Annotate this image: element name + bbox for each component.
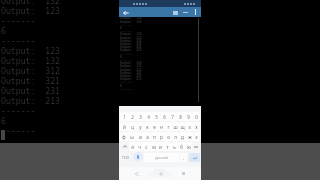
button[interactable]: ь xyxy=(171,142,178,151)
button[interactable]: More options xyxy=(191,8,199,16)
staticText: 7 xyxy=(171,114,174,120)
button[interactable]: ж xyxy=(186,132,193,141)
staticText: р xyxy=(160,134,163,140)
button[interactable]: б xyxy=(178,142,185,151)
staticText: Output: 123 xyxy=(1,5,60,16)
button[interactable]: ю xyxy=(185,142,192,151)
button[interactable]: 7 xyxy=(168,112,176,121)
staticText: ------- xyxy=(120,58,133,62)
staticText: и xyxy=(159,144,162,150)
staticText: Output: 231 xyxy=(1,85,60,96)
button[interactable]: Run xyxy=(171,8,180,17)
staticText: ------- xyxy=(120,29,133,33)
button[interactable]: я xyxy=(129,142,136,151)
button[interactable]: й xyxy=(120,122,128,131)
button[interactable]: щ xyxy=(179,122,186,131)
button[interactable]: . xyxy=(180,153,187,162)
button[interactable]: г xyxy=(165,122,172,131)
button[interactable]: р xyxy=(158,132,165,141)
button[interactable]: ф xyxy=(120,132,128,141)
staticText: в xyxy=(139,134,142,140)
staticText: з xyxy=(188,124,191,130)
button[interactable]: е xyxy=(151,122,158,131)
staticText: е xyxy=(153,124,156,130)
button[interactable]: л xyxy=(172,132,179,141)
button[interactable]: х xyxy=(193,122,200,131)
staticText: ш xyxy=(173,124,178,130)
staticText: 6 xyxy=(120,84,122,88)
staticText: й xyxy=(123,124,126,130)
button[interactable]: н xyxy=(158,122,165,131)
button[interactable]: з xyxy=(186,122,193,131)
staticText: Output: 123 xyxy=(120,20,142,24)
button[interactable]: д xyxy=(179,132,186,141)
button[interactable]: м xyxy=(150,142,157,151)
staticText: ц xyxy=(131,124,134,130)
button[interactable]: Backspace xyxy=(192,142,200,151)
button[interactable]: Enter xyxy=(189,153,200,162)
staticText: х xyxy=(195,124,198,130)
staticText: Output: 213 xyxy=(1,95,60,106)
staticText: ч xyxy=(138,144,141,150)
staticText: Output: 231 xyxy=(120,74,142,78)
staticText: у xyxy=(139,124,142,130)
staticText: ------- xyxy=(1,125,36,136)
button[interactable]: Back xyxy=(121,8,130,17)
staticText: 8 xyxy=(179,114,182,120)
staticText: Output: 132 xyxy=(1,55,60,66)
button[interactable]: ы xyxy=(128,132,136,141)
button[interactable]: 1 xyxy=(120,112,128,121)
staticText: Output: 132 xyxy=(120,64,142,68)
button[interactable]: а xyxy=(144,132,151,141)
button[interactable]: к xyxy=(144,122,151,131)
button[interactable]: ц xyxy=(128,122,136,131)
button[interactable]: Home xyxy=(155,168,166,179)
button[interactable]: Voice input xyxy=(133,152,143,162)
staticText: Output: 312 xyxy=(1,65,60,76)
staticText: 1 xyxy=(123,114,126,120)
staticText: ?123 xyxy=(122,156,129,160)
staticText: Output: 321 xyxy=(120,71,142,75)
button[interactable]: в xyxy=(136,132,144,141)
button[interactable]: э xyxy=(193,132,200,141)
staticText: щ xyxy=(180,124,185,130)
button[interactable]: Recent apps xyxy=(178,168,189,179)
staticText: к xyxy=(146,124,149,130)
button[interactable]: ?123 xyxy=(121,153,130,162)
staticText: ------- xyxy=(1,15,36,26)
button[interactable]: Shift xyxy=(120,142,129,151)
button[interactable]: у xyxy=(136,122,144,131)
button[interactable]: ч xyxy=(136,142,143,151)
button[interactable]: Minimize xyxy=(181,8,190,17)
button[interactable]: 5 xyxy=(152,112,160,121)
staticText: 9 xyxy=(187,114,190,120)
button[interactable]: с xyxy=(143,142,150,151)
staticText: 6 xyxy=(163,114,166,120)
button[interactable]: 9 xyxy=(184,112,192,121)
button[interactable]: русский xyxy=(144,153,179,162)
button[interactable]: 6 xyxy=(160,112,168,121)
staticText: Output: 132 xyxy=(120,16,142,20)
button[interactable]: Back xyxy=(131,168,142,179)
button[interactable]: о xyxy=(165,132,172,141)
staticText: Output: 321 xyxy=(1,75,60,86)
button[interactable]: 3 xyxy=(136,112,144,121)
staticText: Output: 123 xyxy=(120,32,142,36)
button[interactable]: 8 xyxy=(176,112,184,121)
button[interactable]: 0 xyxy=(192,112,200,121)
staticText: 6 xyxy=(1,115,6,126)
button[interactable]: 2 xyxy=(128,112,136,121)
staticText: Output: 213 xyxy=(120,77,142,81)
button[interactable]: ш xyxy=(172,122,179,131)
staticText: с xyxy=(145,144,148,150)
button[interactable]: и xyxy=(157,142,164,151)
staticText: Output: 312 xyxy=(120,68,142,72)
button[interactable]: 4 xyxy=(144,112,152,121)
staticText: 6 xyxy=(120,55,122,59)
staticText: г xyxy=(167,124,170,130)
button[interactable]: п xyxy=(151,132,158,141)
staticText: 0 xyxy=(195,114,198,120)
staticText: ь xyxy=(173,144,176,150)
staticText: а xyxy=(146,134,149,140)
button[interactable]: т xyxy=(164,142,171,151)
